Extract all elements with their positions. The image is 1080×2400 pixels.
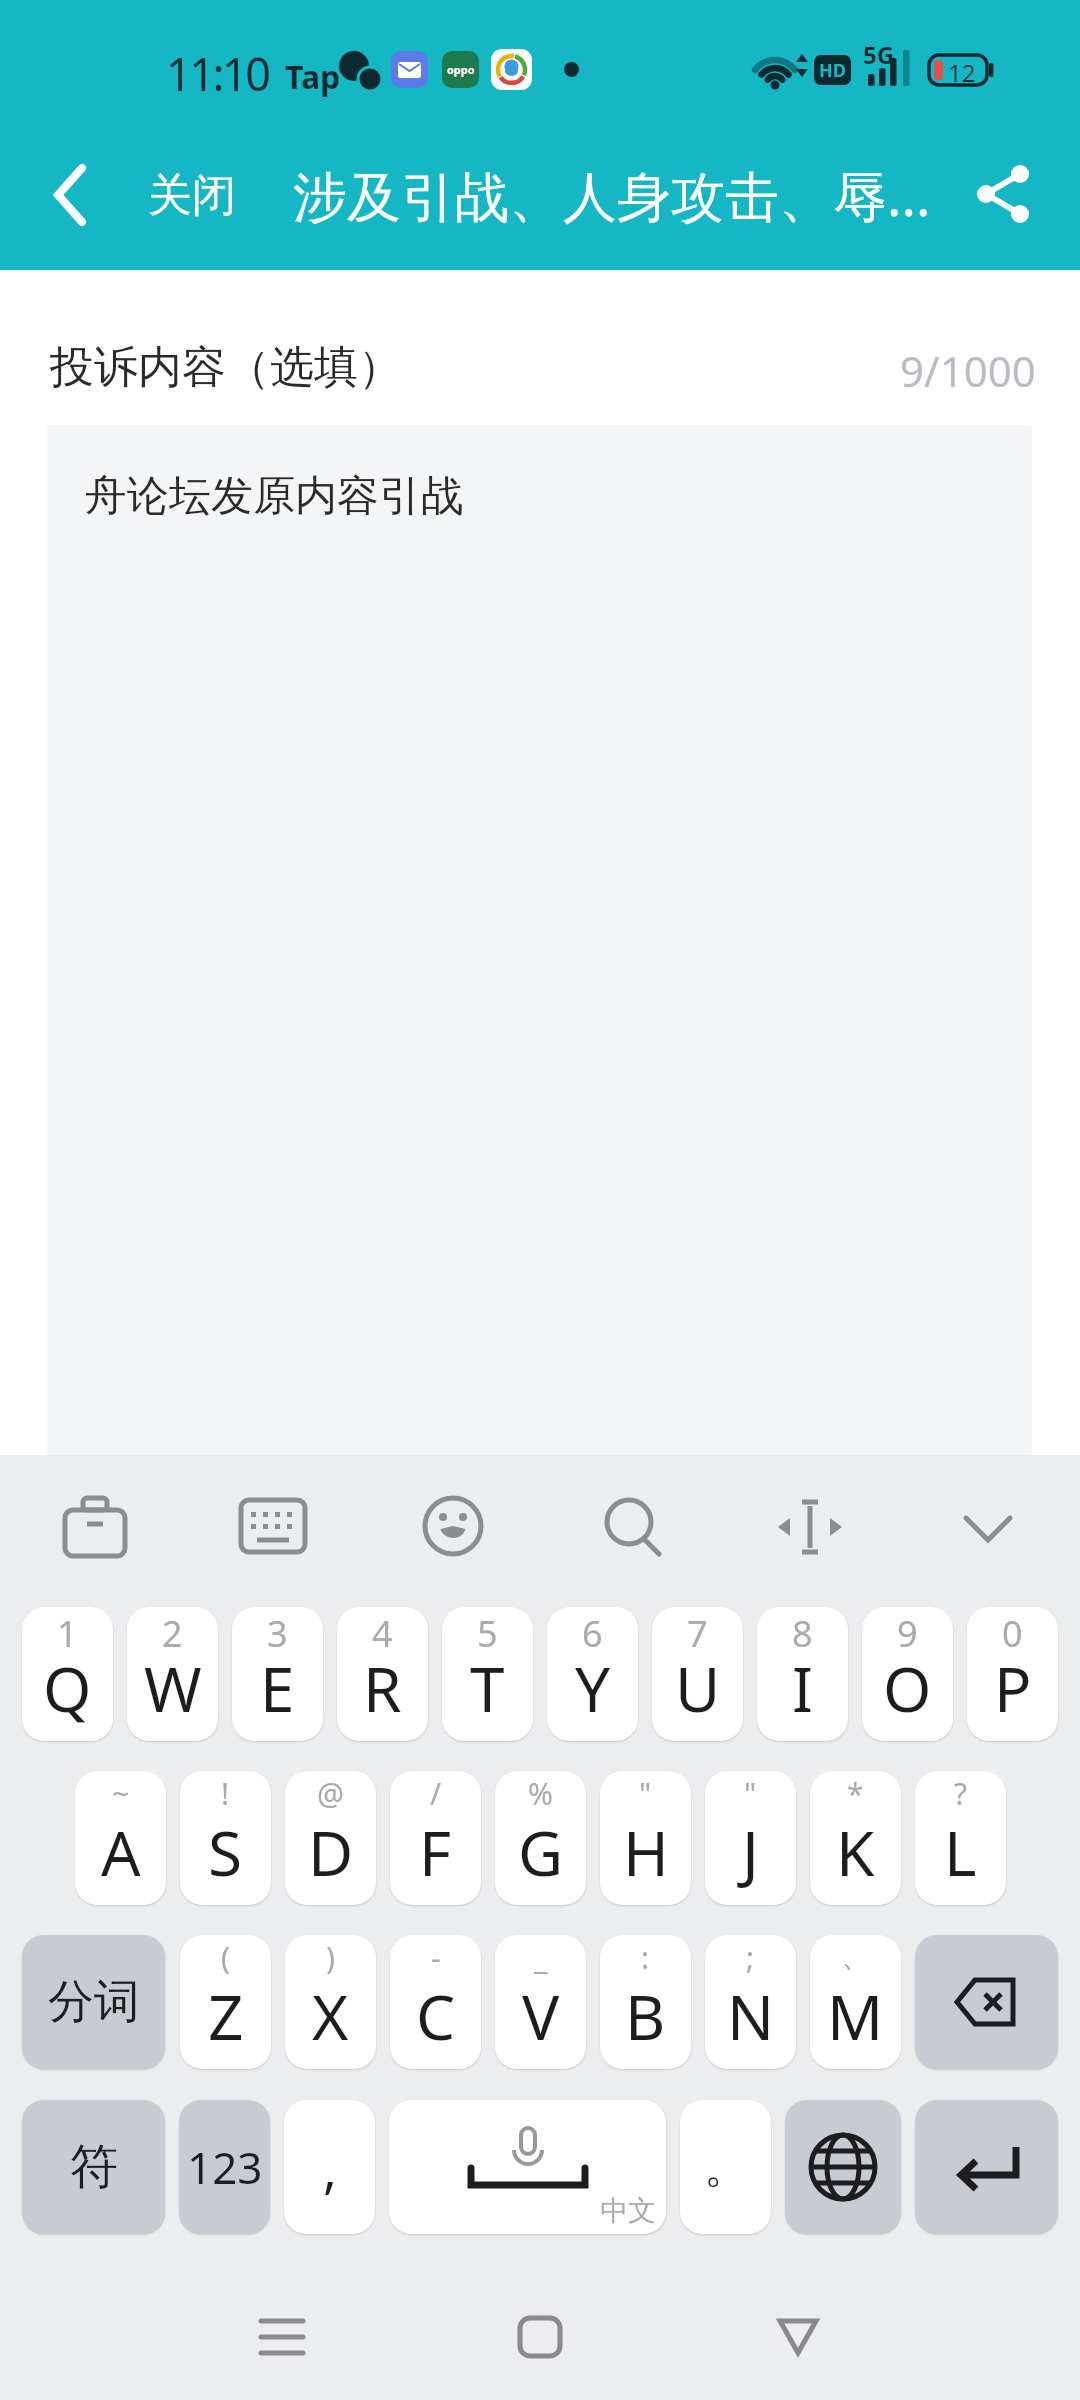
staticText: ! [221, 1773, 230, 1814]
button[interactable]: 。 [680, 2100, 771, 2234]
staticText: 5G [863, 38, 895, 71]
button[interactable] [965, 150, 1055, 240]
staticText: 8 [792, 1609, 813, 1658]
staticText: " [639, 1773, 652, 1814]
staticText: ) [326, 1937, 335, 1978]
button[interactable]: 中文 [389, 2100, 666, 2234]
staticText: * [847, 1773, 864, 1814]
staticText: 123 [187, 2137, 263, 2197]
button[interactable]: ~ [75, 1771, 166, 1905]
button[interactable]: 3 [232, 1607, 323, 1741]
button[interactable] [760, 1490, 860, 1566]
staticText: oppo [447, 62, 475, 77]
staticText: 6 [582, 1609, 603, 1658]
button[interactable] [498, 2297, 582, 2377]
staticText: F [419, 1810, 452, 1894]
button[interactable]: / [390, 1771, 481, 1905]
staticText: - [431, 1937, 441, 1978]
staticText: M [827, 1974, 884, 2058]
button[interactable] [30, 160, 110, 230]
button[interactable]: 5 [442, 1607, 533, 1741]
button[interactable]: 6 [547, 1607, 638, 1741]
staticText: V [522, 1974, 560, 2058]
staticText: 7 [687, 1609, 708, 1658]
staticText: 5 [477, 1609, 498, 1658]
staticText: " [744, 1773, 757, 1814]
staticText: I [792, 1646, 814, 1730]
staticText: 2 [162, 1609, 183, 1658]
button[interactable]: , [284, 2100, 375, 2234]
button[interactable]: % [495, 1771, 586, 1905]
button[interactable]: 123 [179, 2100, 270, 2234]
button[interactable]: 7 [652, 1607, 743, 1741]
staticText: N [727, 1974, 775, 2058]
staticText: X [312, 1974, 349, 2058]
button[interactable]: 舟论坛发原内容引战 [47, 425, 1032, 1455]
staticText: Q [43, 1646, 92, 1730]
staticText: 、 [841, 1937, 871, 1975]
button[interactable]: _ [495, 1935, 586, 2069]
staticText: ; [746, 1937, 755, 1978]
button[interactable] [585, 1490, 681, 1566]
staticText: 舟论坛发原内容引战 [85, 470, 463, 523]
button[interactable]: * [810, 1771, 901, 1905]
button[interactable] [785, 2100, 901, 2234]
staticText: 关闭 [148, 168, 236, 223]
button[interactable]: 关闭 [140, 160, 244, 230]
staticText: D [308, 1810, 354, 1894]
button[interactable] [915, 1935, 1058, 2069]
button[interactable] [940, 1490, 1036, 1566]
staticText: % [528, 1773, 553, 1814]
staticText: 12 [948, 56, 976, 89]
staticText: B [625, 1974, 666, 2058]
staticText: K [836, 1810, 875, 1894]
button[interactable]: - [390, 1935, 481, 2069]
staticText: U [675, 1646, 721, 1730]
staticText: 9 [897, 1609, 918, 1658]
button[interactable]: ( [180, 1935, 271, 2069]
staticText: 11:10 [166, 43, 269, 104]
button[interactable]: ; [705, 1935, 796, 2069]
button[interactable]: ! [180, 1771, 271, 1905]
staticText: ( [221, 1937, 230, 1978]
button[interactable]: 2 [127, 1607, 218, 1741]
staticText: 0 [1002, 1609, 1023, 1658]
button[interactable]: 符 [22, 2100, 165, 2234]
button[interactable]: ? [915, 1771, 1006, 1905]
button[interactable] [240, 2297, 324, 2377]
staticText: 符 [70, 2137, 118, 2197]
staticText: 分词 [48, 1973, 140, 2031]
staticText: W [144, 1646, 202, 1730]
staticText: ? [954, 1773, 968, 1814]
staticText: 投诉内容（选填） [50, 340, 402, 395]
button[interactable] [915, 2100, 1058, 2234]
staticText: Y [575, 1646, 611, 1730]
button[interactable] [405, 1490, 501, 1566]
staticText: T [470, 1646, 505, 1730]
button[interactable]: " [600, 1771, 691, 1905]
staticText: 4 [372, 1609, 393, 1658]
button[interactable]: 8 [757, 1607, 848, 1741]
button[interactable]: 4 [337, 1607, 428, 1741]
staticText: L [944, 1810, 977, 1894]
staticText: : [641, 1937, 650, 1978]
staticText: R [363, 1646, 402, 1730]
staticText: S [208, 1810, 243, 1894]
button[interactable]: 分词 [22, 1935, 165, 2069]
button[interactable]: " [705, 1771, 796, 1905]
button[interactable]: 1 [22, 1607, 113, 1741]
staticText: 中文 [600, 2193, 656, 2228]
button[interactable]: 9 [862, 1607, 953, 1741]
button[interactable] [756, 2297, 840, 2377]
button[interactable] [47, 1490, 143, 1566]
button[interactable]: 0 [967, 1607, 1058, 1741]
button[interactable]: : [600, 1935, 691, 2069]
staticText: C [416, 1974, 456, 2058]
button[interactable] [225, 1490, 321, 1566]
staticText: , [323, 2132, 337, 2203]
button[interactable]: 、 [810, 1935, 901, 2069]
button[interactable]: ) [285, 1935, 376, 2069]
staticText: Z [208, 1974, 244, 2058]
button[interactable]: @ [285, 1771, 376, 1905]
staticText: P [994, 1646, 1032, 1730]
